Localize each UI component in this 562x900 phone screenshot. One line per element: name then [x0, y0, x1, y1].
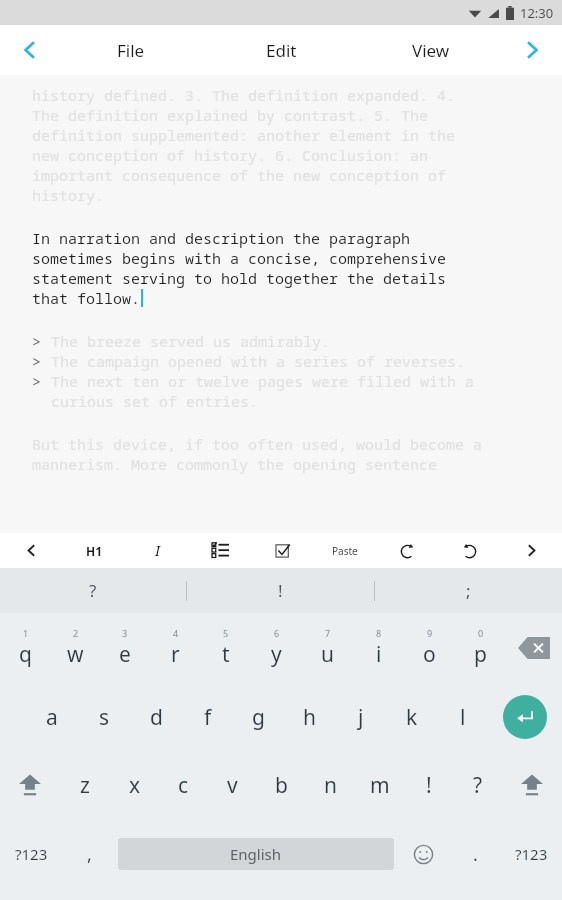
button[interactable]: n [306, 751, 355, 819]
staticText: history. [32, 185, 105, 205]
button[interactable]: m [355, 751, 404, 819]
staticText: j [358, 703, 364, 732]
button[interactable]: a [26, 683, 78, 751]
staticText: The next ten or twelve pages were filled… [51, 371, 475, 391]
staticText: > [32, 331, 51, 351]
staticText: > [32, 351, 51, 371]
button[interactable]: English [118, 838, 394, 870]
button[interactable]: , [62, 819, 116, 889]
staticText: u [321, 640, 334, 669]
staticText: e [119, 640, 131, 669]
staticText: > [32, 371, 51, 391]
button[interactable]: z [60, 751, 110, 819]
button[interactable]: l [437, 683, 488, 751]
button[interactable]: 4 [150, 613, 200, 683]
button[interactable]: Undo [438, 533, 500, 568]
button[interactable]: x [110, 751, 159, 819]
button[interactable]: 0 [455, 613, 506, 683]
button[interactable]: b [257, 751, 306, 819]
button[interactable]: ! [404, 751, 453, 819]
staticText: f [204, 703, 212, 732]
staticText: l [460, 703, 466, 732]
staticText: 7 [325, 627, 331, 639]
button[interactable]: 3 [100, 613, 150, 683]
button[interactable]: ?123 [0, 819, 62, 889]
button[interactable]: c [159, 751, 208, 819]
staticText: 5 [223, 627, 229, 639]
staticText: . [473, 842, 478, 867]
button[interactable]: . [450, 819, 500, 889]
staticText: 8 [376, 627, 382, 639]
button[interactable]: ?123 [500, 819, 562, 889]
button[interactable]: Backspace [506, 613, 562, 683]
button[interactable]: I [126, 533, 189, 568]
staticText: 1 [23, 627, 29, 639]
button[interactable]: Paste [314, 533, 376, 568]
staticText: h [303, 703, 316, 732]
staticText: ! [426, 771, 432, 800]
button[interactable]: 8 [353, 613, 404, 683]
button[interactable]: k [386, 683, 437, 751]
button[interactable]: Redo [376, 533, 438, 568]
button[interactable]: 7 [302, 613, 353, 683]
button[interactable]: 9 [404, 613, 455, 683]
button[interactable]: 2 [50, 613, 100, 683]
staticText: k [406, 703, 418, 732]
staticText: g [252, 703, 265, 732]
button[interactable]: g [233, 683, 284, 751]
staticText: m [370, 771, 390, 800]
button[interactable]: 1 [0, 613, 50, 683]
staticText: z [80, 771, 90, 800]
button[interactable]: f [182, 683, 233, 751]
button[interactable]: ? [0, 568, 186, 613]
staticText: s [99, 703, 110, 732]
staticText: important consequence of the new concept… [32, 165, 447, 185]
staticText: mannerism. More commonly the opening sen… [32, 454, 438, 474]
staticText: definition supplemented: another element… [32, 125, 456, 145]
button[interactable]: v [208, 751, 257, 819]
staticText: In narration and description the paragra… [32, 228, 411, 248]
button[interactable]: Scroll toolbar left [0, 533, 63, 568]
button[interactable]: H1 [63, 533, 126, 568]
staticText: The definition explained by contrast. 5.… [32, 105, 429, 125]
button[interactable]: h [284, 683, 335, 751]
button[interactable]: history defined. 3. The definition expan… [32, 85, 552, 533]
staticText: ; [466, 579, 471, 602]
button[interactable]: Shift [502, 751, 562, 819]
staticText: 12:30 [520, 4, 554, 22]
button[interactable]: Enter [488, 683, 562, 751]
staticText: t [222, 640, 230, 669]
staticText: a [46, 703, 58, 732]
staticText: y [271, 640, 282, 669]
staticText: ! [278, 579, 283, 602]
staticText: 6 [274, 627, 280, 639]
button[interactable]: ? [453, 751, 502, 819]
button[interactable]: Next menu [502, 25, 562, 75]
button[interactable]: Emoji [396, 819, 450, 889]
button[interactable]: Previous menu [0, 25, 60, 75]
staticText: 4 [173, 627, 179, 639]
staticText: The breeze served us admirably. [51, 331, 331, 351]
staticText: ? [89, 579, 97, 602]
button[interactable]: j [335, 683, 386, 751]
button[interactable]: 5 [200, 613, 251, 683]
button[interactable]: Shift [0, 751, 60, 819]
button[interactable]: ; [375, 568, 562, 613]
staticText: View [412, 39, 450, 62]
button[interactable]: ! [187, 568, 374, 613]
staticText: The campaign opened with a series of rev… [51, 351, 466, 371]
button[interactable]: 6 [251, 613, 302, 683]
button[interactable]: d [130, 683, 182, 751]
staticText: 3 [122, 627, 128, 639]
button[interactable]: s [78, 683, 130, 751]
button[interactable]: Checkbox [252, 533, 314, 568]
button[interactable]: File [56, 25, 206, 75]
staticText: p [474, 640, 487, 669]
button[interactable]: Scroll toolbar right [500, 533, 562, 568]
staticText: c [178, 771, 189, 800]
button[interactable]: Edit [206, 25, 356, 75]
staticText: n [324, 771, 337, 800]
button[interactable]: Checklist [189, 533, 252, 568]
button[interactable]: View [356, 25, 506, 75]
